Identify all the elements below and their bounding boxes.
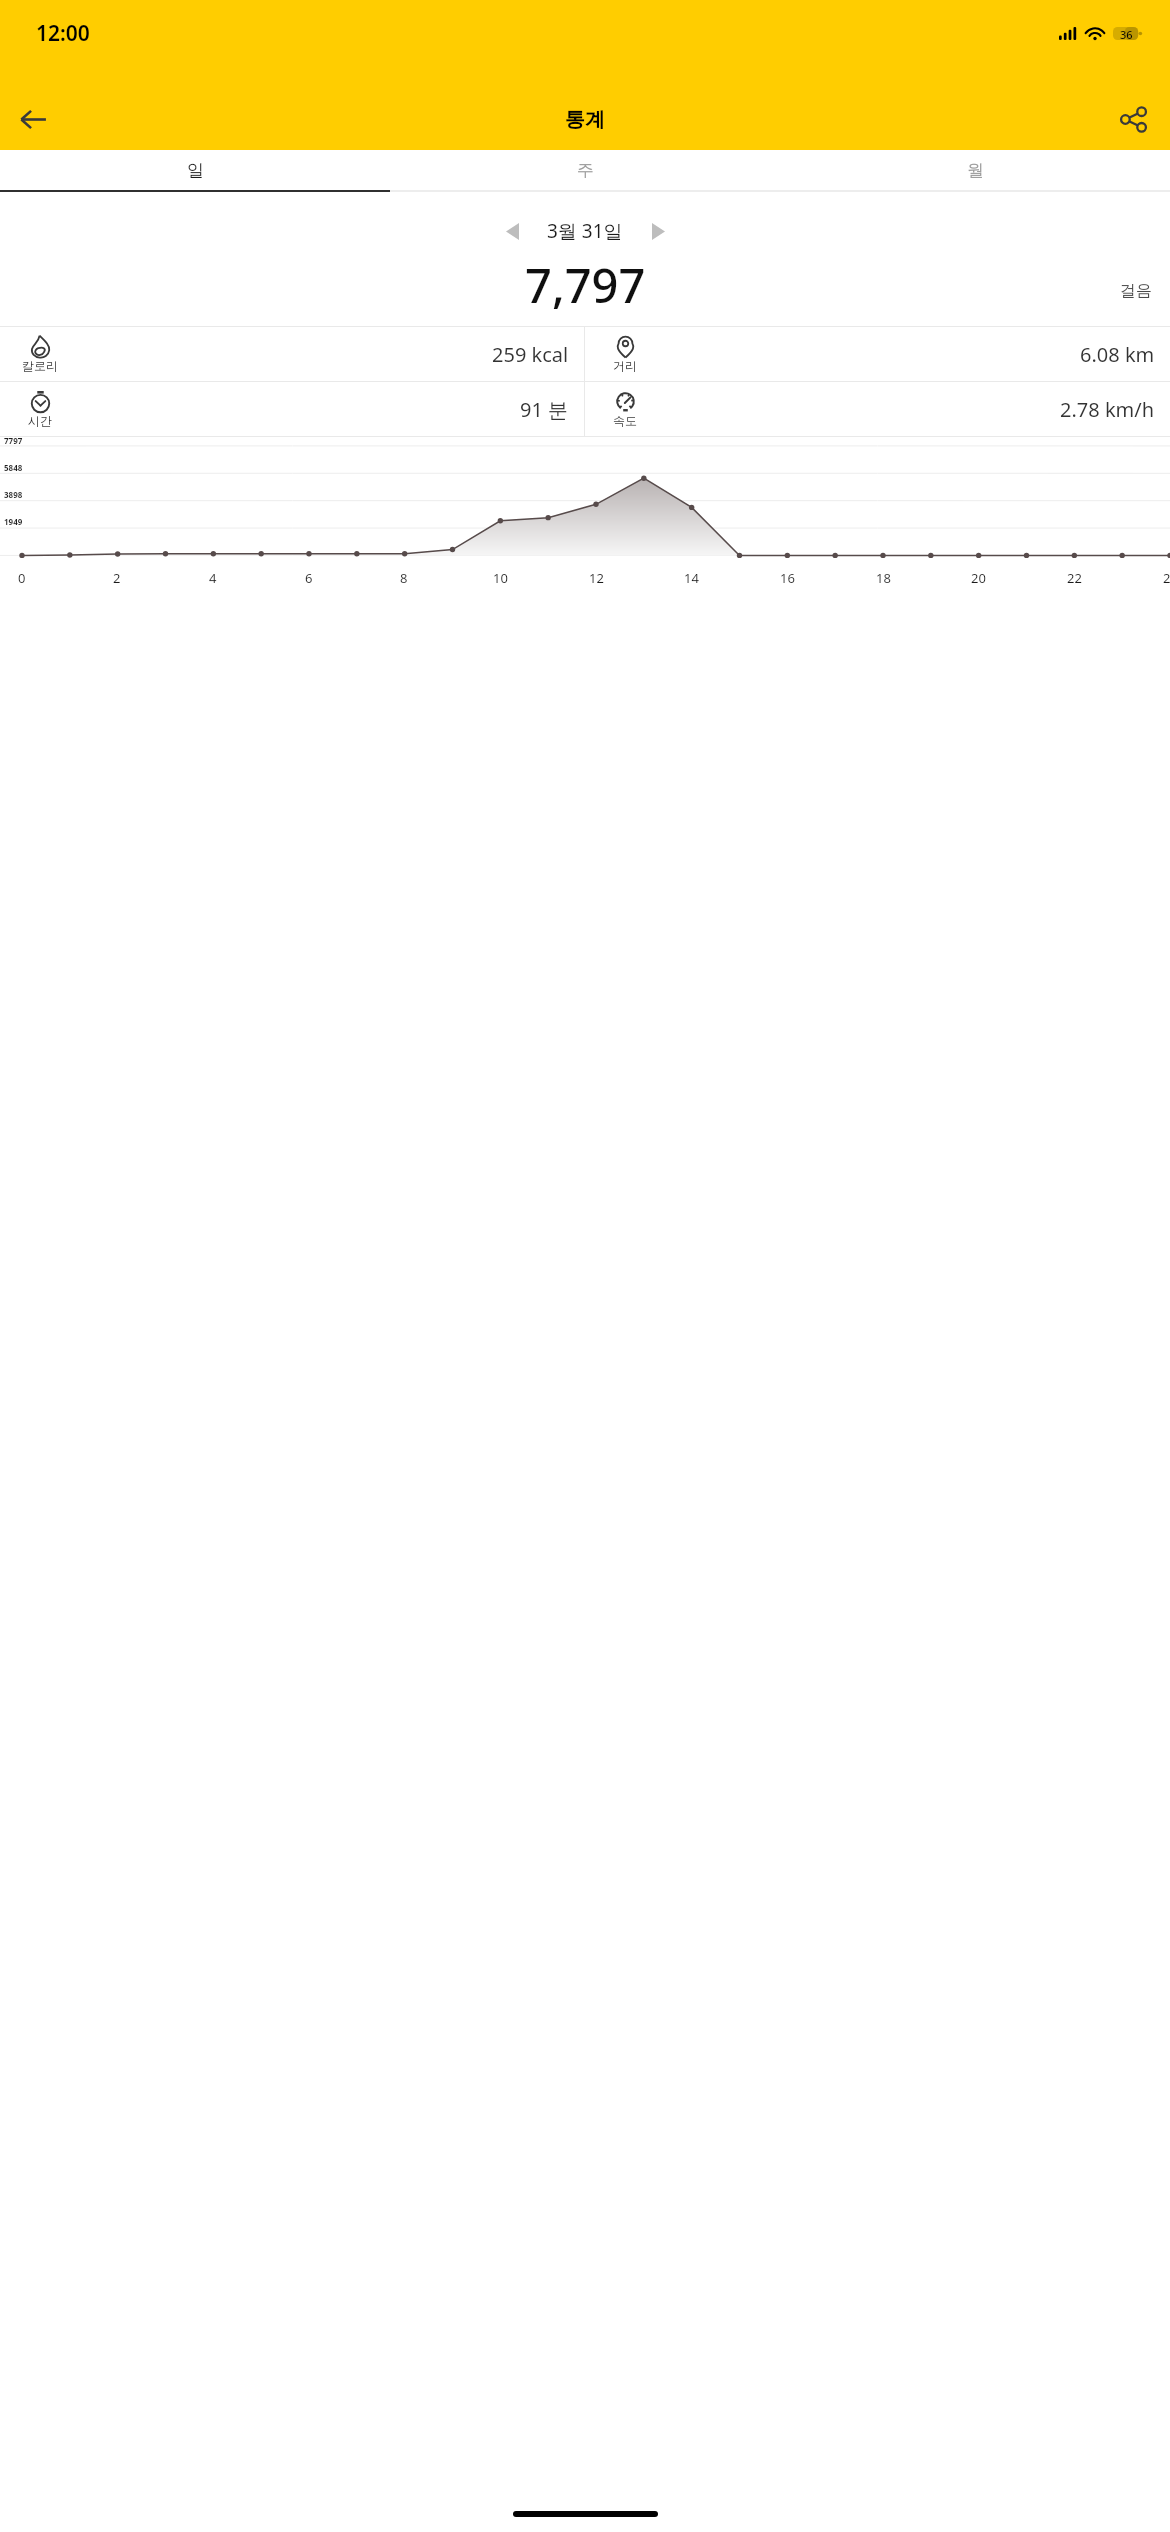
- staticText: 12:00: [36, 19, 90, 48]
- staticText: 3898: [4, 489, 23, 500]
- staticText: 걸음: [1120, 281, 1152, 301]
- staticText: 3월 31일: [547, 218, 623, 244]
- button[interactable]: Back: [6, 92, 60, 146]
- staticText: 속도: [613, 413, 637, 428]
- staticText: 일: [187, 160, 204, 181]
- staticText: 5848: [4, 462, 23, 473]
- button[interactable]: Share: [1106, 92, 1160, 146]
- staticText: 6.08 km: [1080, 341, 1155, 368]
- staticText: 거리: [613, 358, 637, 373]
- staticText: 10: [493, 569, 508, 587]
- button[interactable]: 시간: [0, 382, 584, 436]
- staticText: 2: [113, 569, 121, 587]
- button[interactable]: 월: [780, 150, 1170, 190]
- staticText: 2.78 km/h: [1060, 396, 1155, 423]
- staticText: 0: [18, 569, 26, 587]
- button[interactable]: 거리: [585, 327, 1170, 381]
- staticText: 칼로리: [22, 358, 58, 373]
- staticText: 12: [589, 569, 604, 587]
- staticText: 14: [684, 569, 699, 587]
- staticText: 259 kcal: [492, 341, 569, 368]
- staticText: 4: [209, 569, 217, 587]
- staticText: 8: [400, 569, 408, 587]
- staticText: 7797: [4, 435, 23, 446]
- staticText: 16: [780, 569, 795, 587]
- staticText: 91 분: [520, 396, 569, 423]
- button[interactable]: 칼로리: [0, 327, 584, 381]
- staticText: 시간: [28, 413, 52, 428]
- staticText: 22: [1067, 569, 1082, 587]
- staticText: 1949: [4, 516, 23, 527]
- staticText: 20: [971, 569, 986, 587]
- staticText: 월: [967, 160, 984, 181]
- button[interactable]: 주: [390, 150, 780, 190]
- button[interactable]: 일: [0, 150, 390, 190]
- staticText: 주: [577, 160, 594, 181]
- staticText: 6: [305, 569, 313, 587]
- staticText: 18: [876, 569, 891, 587]
- button[interactable]: Next day: [635, 209, 681, 253]
- button[interactable]: Previous day: [489, 209, 535, 253]
- button[interactable]: 속도: [585, 382, 1170, 436]
- staticText: 36: [1120, 27, 1133, 40]
- staticText: 통계: [565, 107, 605, 132]
- staticText: 24: [1163, 569, 1170, 587]
- staticText: 7,797: [525, 253, 646, 317]
